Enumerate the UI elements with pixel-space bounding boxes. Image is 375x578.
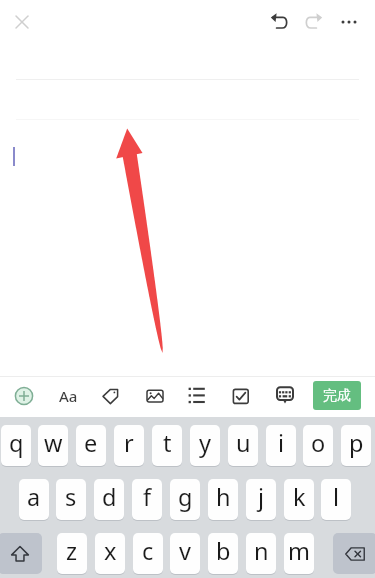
button[interactable]: More options — [333, 6, 365, 38]
button[interactable]: Checklist — [225, 380, 257, 412]
staticText: a — [27, 481, 41, 513]
staticText: h — [216, 481, 231, 513]
staticText: i — [278, 427, 285, 459]
staticText: y — [199, 427, 211, 459]
button[interactable]: l — [321, 479, 351, 520]
staticText: w — [44, 427, 63, 459]
staticText: s — [65, 481, 77, 513]
staticText: l — [333, 481, 340, 513]
button[interactable]: Shift — [0, 533, 42, 574]
button[interactable]: Image — [139, 380, 171, 412]
button[interactable]: i — [266, 425, 296, 466]
button[interactable]: y — [190, 425, 220, 466]
staticText: n — [254, 535, 269, 567]
button[interactable]: Undo — [263, 6, 295, 38]
button[interactable]: c — [133, 533, 163, 574]
button[interactable]: Backspace — [333, 533, 375, 574]
staticText: f — [143, 481, 152, 513]
button[interactable]: s — [56, 479, 86, 520]
staticText: e — [84, 427, 98, 459]
button[interactable]: o — [303, 425, 333, 466]
button[interactable]: q — [1, 425, 31, 466]
staticText: v — [179, 535, 191, 567]
staticText: 完成 — [323, 387, 351, 405]
button[interactable]: w — [38, 425, 68, 466]
button[interactable]: u — [228, 425, 258, 466]
button[interactable]: Close — [6, 6, 38, 38]
button[interactable]: r — [114, 425, 144, 466]
button[interactable]: Tag — [94, 380, 126, 412]
button[interactable]: f — [132, 479, 162, 520]
staticText: k — [293, 481, 306, 513]
staticText: j — [258, 481, 265, 513]
staticText: x — [104, 535, 117, 567]
button[interactable]: d — [94, 479, 124, 520]
staticText: o — [311, 427, 326, 459]
staticText: u — [236, 427, 251, 459]
button[interactable]: Add — [8, 380, 40, 412]
button[interactable]: x — [95, 533, 125, 574]
staticText: b — [216, 535, 231, 567]
staticText: c — [142, 535, 154, 567]
staticText: g — [178, 481, 193, 513]
button[interactable]: Bulleted list — [182, 380, 214, 412]
button[interactable]: e — [76, 425, 106, 466]
staticText: q — [9, 427, 24, 459]
staticText: m — [288, 535, 310, 567]
button[interactable]: h — [208, 479, 238, 520]
button[interactable]: b — [208, 533, 238, 574]
staticText: Aa — [59, 386, 78, 406]
button[interactable]: p — [341, 425, 371, 466]
button[interactable]: v — [170, 533, 200, 574]
button[interactable]: m — [284, 533, 314, 574]
button[interactable]: Text format — [52, 380, 84, 412]
staticText: r — [124, 427, 134, 459]
staticText: t — [163, 427, 172, 459]
button[interactable]: j — [246, 479, 276, 520]
staticText: z — [66, 535, 78, 567]
button[interactable]: t — [152, 425, 182, 466]
staticText: d — [102, 481, 117, 513]
button[interactable]: n — [246, 533, 276, 574]
button[interactable]: z — [57, 533, 87, 574]
button[interactable]: a — [19, 479, 49, 520]
button[interactable]: k — [284, 479, 314, 520]
button[interactable]: g — [170, 479, 200, 520]
button[interactable]: Hide keyboard — [269, 380, 301, 412]
button[interactable]: Redo — [298, 6, 330, 38]
button[interactable]: 完成 — [313, 381, 361, 410]
staticText: p — [349, 427, 364, 459]
